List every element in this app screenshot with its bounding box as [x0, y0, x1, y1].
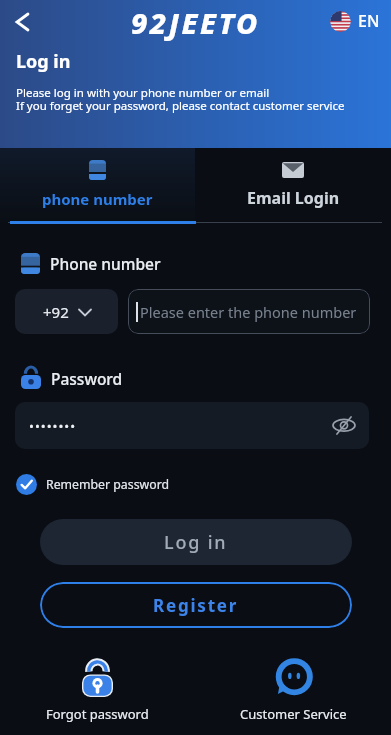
- staticText: Forgot password: [46, 705, 149, 723]
- button[interactable]: Email Login: [195, 148, 391, 224]
- staticText: Please log in with your phone number or …: [16, 85, 270, 101]
- button[interactable]: EN: [330, 10, 380, 32]
- staticText: +92: [43, 302, 69, 322]
- staticText: 92JEETO: [131, 3, 260, 42]
- button[interactable]: +92: [15, 289, 118, 334]
- button[interactable]: ••••••••: [15, 402, 369, 449]
- staticText: Remember password: [46, 476, 170, 493]
- staticText: Log in: [164, 530, 228, 555]
- staticText: Email Login: [247, 187, 340, 209]
- button[interactable]: Register: [40, 582, 352, 628]
- button[interactable]: Forgot password: [0, 658, 195, 723]
- staticText: Register: [153, 594, 239, 617]
- button[interactable]: Please enter the phone number: [128, 289, 370, 334]
- staticText: Please enter the phone number: [140, 302, 357, 322]
- staticText: phone number: [42, 189, 153, 209]
- staticText: ••••••••: [29, 417, 77, 435]
- button[interactable]: Remember password: [16, 474, 170, 495]
- staticText: Customer Service: [240, 705, 347, 723]
- staticText: Log in: [16, 49, 71, 74]
- button[interactable]: Customer Service: [195, 658, 391, 723]
- staticText: If you forget your password, please cont…: [16, 98, 345, 114]
- button[interactable]: Log in: [40, 519, 352, 565]
- staticText: Password: [51, 368, 123, 389]
- button[interactable]: [8, 8, 36, 36]
- staticText: EN: [358, 10, 380, 32]
- staticText: Phone number: [50, 253, 161, 274]
- button[interactable]: phone number: [0, 148, 195, 224]
